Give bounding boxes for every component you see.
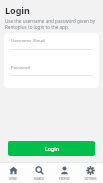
button[interactable]: SETTINGS: [78, 164, 102, 183]
staticText: SEARCH: [34, 177, 44, 181]
staticText: Login: [5, 4, 30, 16]
button[interactable]: Login: [8, 141, 95, 156]
staticText: SETTINGS: [84, 177, 97, 181]
button[interactable]: Password: [4, 61, 99, 75]
staticText: Username /Email: [11, 38, 45, 44]
button[interactable]: Username /Email: [4, 33, 99, 49]
staticText: Use the username and password given by R…: [5, 18, 97, 30]
staticText: Login: [45, 145, 59, 152]
staticText: PROFILE: [59, 177, 70, 181]
staticText: Password: [11, 65, 30, 71]
button[interactable]: PROFILE: [52, 164, 76, 183]
button[interactable]: SEARCH: [27, 164, 51, 183]
staticText: HOME: [9, 177, 17, 181]
button[interactable]: HOME: [1, 164, 25, 183]
